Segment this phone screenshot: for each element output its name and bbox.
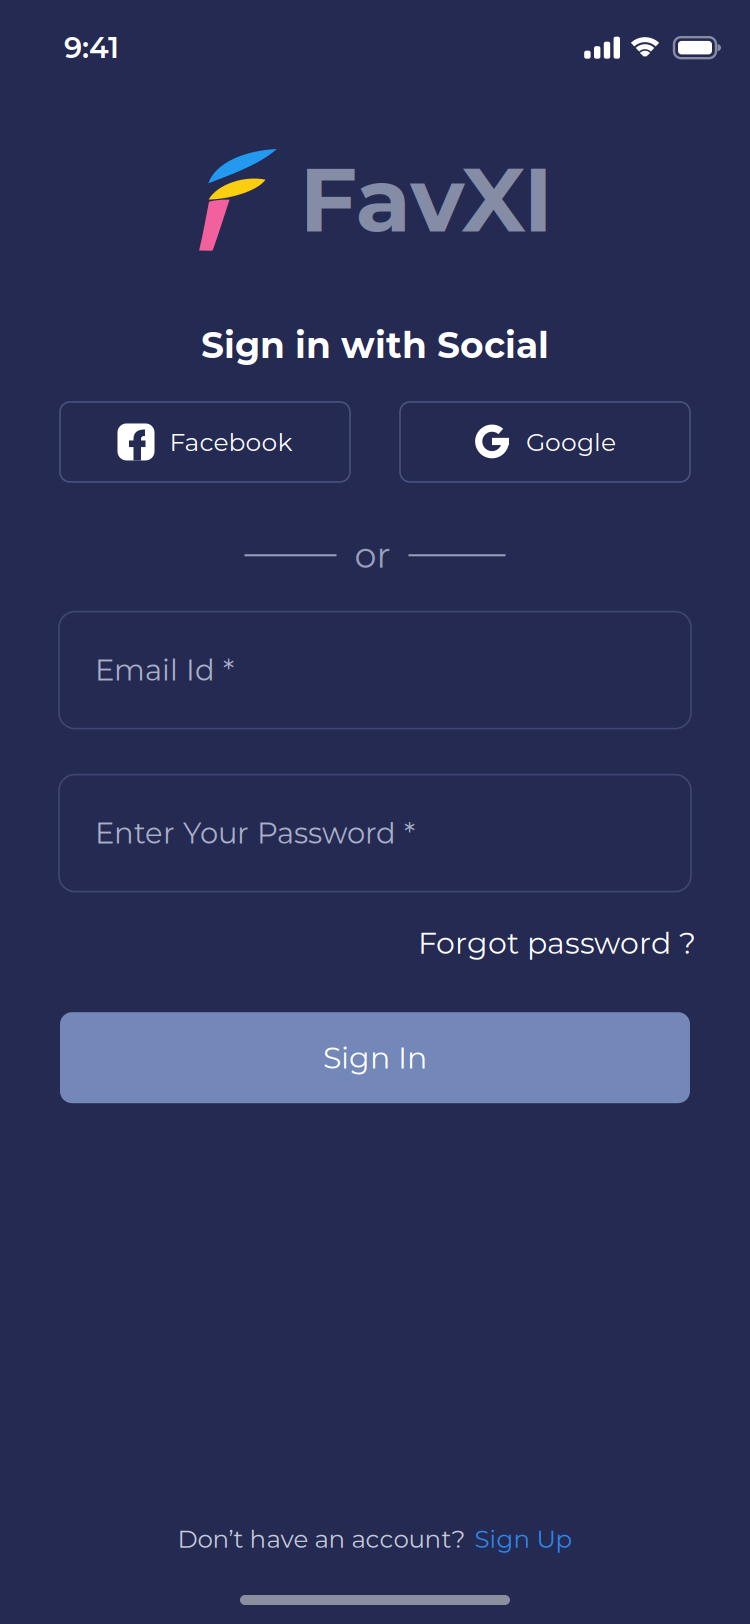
staticText: FavXI (299, 144, 553, 254)
staticText: or (354, 534, 390, 577)
staticText: Forgot password ? (418, 925, 696, 961)
staticText: Enter Your Password * (95, 815, 415, 851)
staticText: Sign In (323, 1039, 427, 1076)
button[interactable]: Facebook (60, 402, 350, 482)
staticText: Don’t have an account? (177, 1524, 465, 1554)
staticText: 9:41 (64, 30, 119, 65)
button[interactable]: Email Id * (59, 612, 691, 729)
button[interactable]: Google (400, 402, 690, 482)
staticText: Sign in with Social (201, 323, 549, 367)
staticText: Sign Up (474, 1524, 572, 1554)
staticText: Google (526, 427, 616, 457)
button[interactable]: Sign In (60, 1012, 690, 1103)
staticText: Facebook (169, 427, 292, 457)
button[interactable]: Sign Up (474, 1524, 572, 1554)
button[interactable]: Forgot password ? (418, 925, 696, 961)
staticText: Email Id * (95, 652, 234, 688)
button[interactable]: Enter Your Password * (59, 775, 691, 892)
